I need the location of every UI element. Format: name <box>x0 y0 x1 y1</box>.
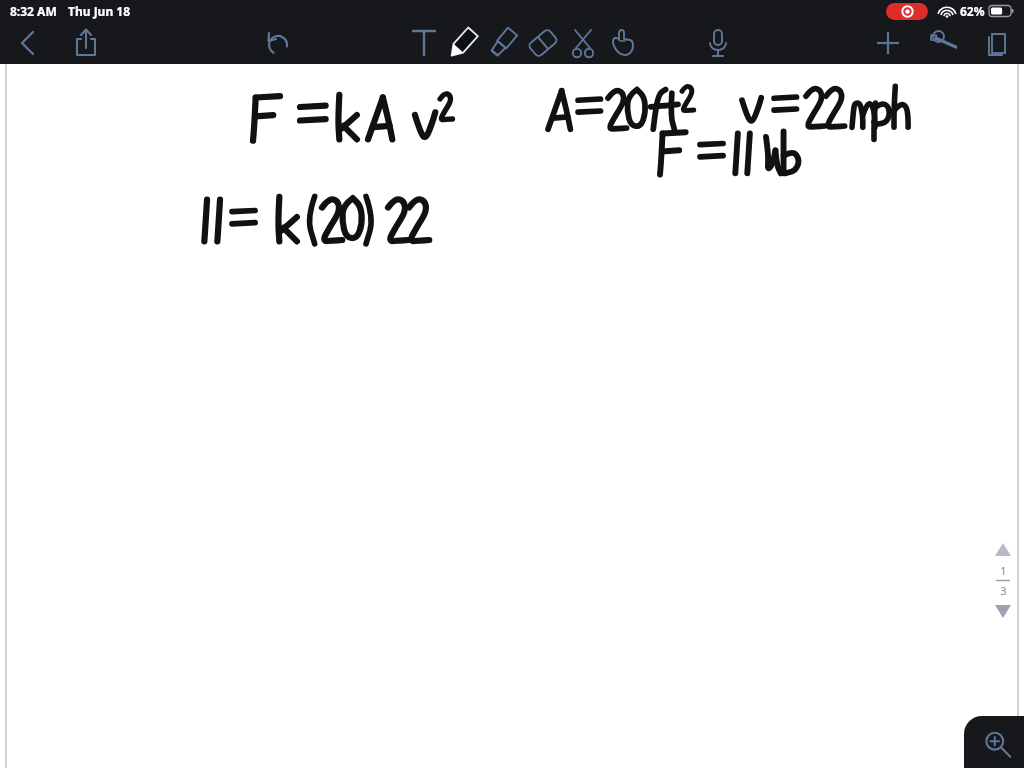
staticText: 62% <box>960 3 985 19</box>
button[interactable]: Settings <box>922 23 962 63</box>
staticText: 1 <box>1000 563 1007 578</box>
button[interactable]: Previous page <box>990 537 1016 563</box>
button[interactable]: Selection tool <box>563 23 603 63</box>
staticText: 3 <box>1000 583 1007 598</box>
other: Recording <box>886 3 928 20</box>
button[interactable]: Text tool <box>405 24 443 62</box>
button[interactable]: Microphone <box>698 23 738 63</box>
staticText: 8:32 AM <box>10 3 57 19</box>
button[interactable]: Pan tool <box>603 23 643 63</box>
button[interactable]: Zoom <box>964 716 1024 768</box>
button[interactable]: Highlighter tool <box>483 23 523 63</box>
button[interactable]: Undo <box>258 23 298 63</box>
staticText: Thu Jun 18 <box>68 3 131 19</box>
button[interactable]: Back <box>8 23 48 63</box>
button[interactable]: Share <box>66 23 106 63</box>
button[interactable]: Next page <box>990 598 1016 624</box>
button[interactable]: Add <box>868 23 908 63</box>
button[interactable]: Pen tool <box>443 23 483 63</box>
button[interactable]: Eraser tool <box>523 23 563 63</box>
button[interactable]: Pages <box>976 23 1016 63</box>
